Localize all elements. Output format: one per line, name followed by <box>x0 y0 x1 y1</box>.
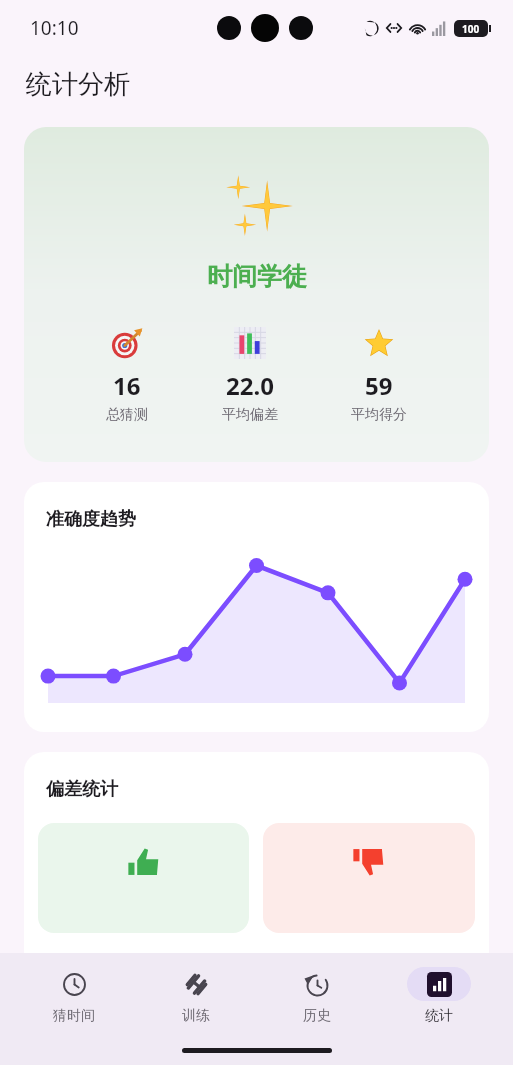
staticText: 100 <box>462 22 480 36</box>
button[interactable]: 时间学徒 <box>24 127 489 462</box>
staticText: 历史 <box>303 1007 331 1025</box>
staticText: 时间学徒 <box>207 261 307 292</box>
button[interactable] <box>38 823 249 933</box>
button[interactable]: 准确度趋势 <box>24 482 489 732</box>
staticText: 统计分析 <box>26 68 130 101</box>
staticText: 平均偏差 <box>222 406 278 424</box>
button[interactable]: 训练 <box>148 967 244 1025</box>
staticText: 总猜测 <box>106 406 148 424</box>
staticText: 统计 <box>425 1007 453 1025</box>
staticText: 准确度趋势 <box>46 508 136 531</box>
button[interactable]: 统计 <box>391 967 487 1025</box>
staticText: 22.0 <box>226 369 274 402</box>
staticText: 10:10 <box>30 15 79 41</box>
button[interactable]: 猜时间 <box>26 967 122 1025</box>
staticText: 59 <box>365 369 393 402</box>
staticText: 训练 <box>182 1007 210 1025</box>
button[interactable]: 历史 <box>269 967 365 1025</box>
staticText: 偏差统计 <box>46 778 118 801</box>
staticText: 猜时间 <box>53 1007 95 1025</box>
staticText: 平均得分 <box>351 406 407 424</box>
button[interactable]: 偏差统计 <box>24 752 489 972</box>
staticText: 16 <box>113 369 141 402</box>
button[interactable] <box>263 823 475 933</box>
